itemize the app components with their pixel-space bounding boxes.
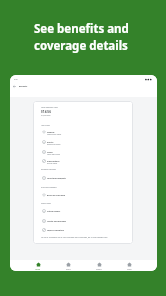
button[interactable]: Vision	[33, 148, 133, 157]
staticText: More	[127, 268, 132, 270]
button[interactable]: Critical illness	[33, 207, 133, 216]
button[interactable]: Tobacco cessation	[33, 226, 133, 235]
staticText: $14.56	[41, 110, 52, 114]
staticText: Dental plan name	[47, 143, 61, 145]
staticText: Tobacco cessation	[47, 229, 65, 232]
staticText: Disability benefits	[41, 168, 57, 170]
staticText: Insurance benefits	[41, 186, 57, 188]
staticText: of $250 total	[41, 114, 51, 116]
staticText: Basic life insurance	[47, 194, 66, 197]
button[interactable]: Home	[35, 262, 41, 270]
button[interactable]: More	[127, 262, 132, 270]
staticText: Dental	[47, 141, 54, 144]
button[interactable]: Prescriptions	[33, 157, 133, 166]
staticText: Vision	[47, 151, 53, 154]
button[interactable]: Plans	[66, 262, 71, 270]
staticText: Other plans	[41, 202, 51, 204]
staticText: Claims	[96, 268, 102, 270]
staticText: Your plans	[41, 124, 50, 126]
staticText: Long term disability	[47, 177, 66, 180]
staticText: See benefits and coverage details	[34, 21, 129, 53]
button[interactable]: Basic life insurance	[33, 191, 133, 200]
button[interactable]: Dental	[33, 138, 133, 147]
staticText: Benefits	[19, 85, 28, 88]
staticText: Prescriptions	[47, 160, 60, 163]
staticText: Critical illness	[47, 210, 61, 213]
staticText: 9:30	[14, 78, 18, 80]
staticText: Medical plan name	[47, 133, 62, 135]
button[interactable]: Long term disability	[33, 174, 133, 183]
staticText: Home	[35, 268, 41, 270]
staticText: Rx plan name	[47, 162, 58, 164]
staticText: To see a complete list of your benefits …	[41, 236, 108, 239]
button[interactable]: Medical	[33, 128, 133, 137]
button[interactable]: Claims	[96, 262, 102, 270]
staticText: Health and wellness	[47, 220, 66, 223]
staticText: Medical	[47, 131, 55, 134]
staticText: Plans	[66, 268, 71, 270]
staticText: Total benefits used	[41, 106, 58, 109]
button[interactable]: Health and wellness	[33, 217, 133, 226]
button[interactable]: Back	[11, 82, 18, 91]
staticText: Vision plan name	[47, 153, 60, 155]
